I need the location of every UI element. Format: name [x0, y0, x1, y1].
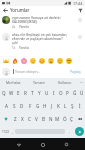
staticText: Merhaba [6, 80, 21, 85]
button[interactable]: Merhaba [0, 78, 26, 86]
button[interactable]: Shift [0, 112, 11, 125]
staticText: Yanıtla [19, 46, 29, 50]
staticText: İ [79, 103, 81, 109]
staticText: V [35, 116, 38, 122]
button[interactable]: Back [13, 139, 24, 150]
button[interactable]: Emoji [19, 56, 28, 65]
staticText: P [66, 90, 69, 96]
button[interactable]: S [10, 99, 18, 112]
staticText: Ö [63, 116, 67, 122]
button[interactable]: R [22, 86, 29, 99]
button[interactable]: Recents [61, 139, 72, 150]
button[interactable]: C [26, 112, 33, 125]
staticText: I [53, 90, 55, 96]
button[interactable]: Home [37, 139, 48, 150]
button[interactable]: B [40, 112, 47, 125]
button[interactable]: Sort comments [75, 6, 85, 14]
button[interactable]: Yorum ekleyin... [13, 69, 68, 74]
staticText: S [13, 103, 16, 109]
button[interactable]: X [19, 112, 26, 125]
button[interactable]: Emoji [55, 56, 64, 65]
staticText: T [31, 90, 34, 96]
button[interactable]: Z [11, 112, 19, 125]
staticText: A [5, 103, 8, 109]
button[interactable]: Ç [68, 112, 75, 125]
button[interactable]: D [18, 99, 26, 112]
button[interactable]: Send [75, 127, 84, 136]
staticText: H [43, 103, 47, 109]
staticText: G [36, 103, 40, 109]
button[interactable]: O [57, 86, 64, 99]
staticText: ahsu.nlrt Beşiktaşlı en yok hasandan, el… [12, 33, 68, 45]
button[interactable]: Emoji [1, 56, 10, 65]
button[interactable]: P [64, 86, 71, 99]
staticText: E [17, 90, 20, 96]
button[interactable]: V [33, 112, 40, 125]
button[interactable]: cypruswonn Kamuya ait devletin KALDIRBEŞ… [0, 16, 85, 29]
button[interactable]: ?123 [0, 125, 11, 138]
button[interactable]: Paylaş [68, 68, 83, 75]
button[interactable]: U [43, 86, 50, 99]
staticText: Q [2, 90, 6, 96]
staticText: Yorumlar [10, 7, 30, 13]
button[interactable]: Yanıtla [19, 25, 29, 29]
button[interactable]: Ö [61, 112, 68, 125]
button[interactable]: ahsu.nlrt Beşiktaşlı en yok hasandan, el… [0, 33, 85, 50]
button[interactable]: Q [0, 86, 8, 99]
staticText: . [69, 129, 71, 134]
button[interactable]: L [62, 99, 69, 112]
staticText: Paylaş [70, 69, 81, 74]
button[interactable]: Comma [11, 125, 14, 138]
button[interactable]: T [29, 86, 36, 99]
staticText: Kullanıcı [58, 80, 72, 85]
button[interactable]: Back [0, 6, 10, 14]
staticText: W [9, 90, 14, 96]
button[interactable]: Ü [78, 86, 85, 99]
button[interactable]: Emoji [37, 56, 46, 65]
button[interactable]: Backspace [75, 112, 85, 125]
staticText: K [57, 103, 60, 109]
staticText: 17:44 [73, 1, 83, 6]
button[interactable]: Like [76, 16, 84, 24]
staticText: Yorum ekleyin... [15, 69, 41, 74]
button[interactable]: Tamam [26, 78, 52, 86]
staticText: Yanıtla [19, 25, 29, 29]
button[interactable]: Kullanıcı [52, 78, 78, 86]
button[interactable]: E [15, 86, 22, 99]
staticText: Ü [80, 90, 84, 96]
button[interactable]: Emoji [10, 56, 19, 65]
staticText: X [21, 116, 24, 122]
button[interactable]: M [54, 112, 61, 125]
button[interactable]: Emoji [64, 56, 73, 65]
staticText: M [55, 116, 60, 122]
staticText: R [24, 90, 27, 96]
button[interactable]: F [26, 99, 34, 112]
button[interactable]: J [48, 99, 55, 112]
staticText: Tamam [33, 80, 45, 85]
button[interactable]: W [8, 86, 15, 99]
staticText: B [42, 116, 45, 122]
button[interactable]: A [2, 99, 10, 112]
staticText: Ğ [73, 90, 77, 96]
button[interactable]: Emoji [46, 56, 55, 65]
staticText: Y [38, 90, 41, 96]
staticText: N [49, 116, 53, 122]
button[interactable]: K [55, 99, 62, 112]
button[interactable]: İ [76, 99, 83, 112]
button[interactable]: Ş [69, 99, 76, 112]
button[interactable]: G [34, 99, 41, 112]
button[interactable]: Yanıtla [19, 46, 29, 50]
staticText: , [12, 129, 14, 134]
button[interactable]: Like [76, 33, 84, 41]
staticText: Ç [70, 116, 73, 122]
button[interactable]: I [50, 86, 57, 99]
button[interactable]: Emoji [28, 56, 37, 65]
button[interactable]: Y [36, 86, 43, 99]
button[interactable]: More suggestions [78, 78, 85, 86]
staticText: cypruswonn Kamuya ait devletin KALDIRBEŞ… [12, 16, 61, 24]
button[interactable]: N [47, 112, 54, 125]
button[interactable]: H [41, 99, 48, 112]
button[interactable]: Ğ [71, 86, 78, 99]
